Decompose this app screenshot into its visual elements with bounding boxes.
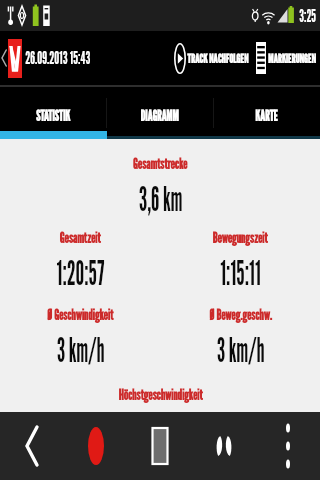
button[interactable]: KARTE	[213, 87, 320, 139]
staticText: 3:25	[299, 6, 316, 26]
staticText: MARKIERUNGEN	[268, 51, 316, 65]
button[interactable]: Stop	[128, 412, 192, 480]
staticText: TRACK NACHFOLGEN	[187, 51, 249, 65]
button[interactable]: Back	[0, 412, 64, 480]
staticText: STATISTIK	[36, 107, 70, 124]
staticText: DIAGRAMM	[140, 107, 179, 124]
button[interactable]: DIAGRAMM	[106, 87, 213, 139]
staticText: Bewegungszeit	[212, 229, 267, 246]
staticText: 1:20:57	[56, 252, 105, 293]
staticText: 3,6 km	[138, 178, 182, 219]
button[interactable]: Record	[64, 412, 128, 480]
staticText: Gesamtzeit	[59, 229, 101, 246]
staticText: Höchstgeschwindigkeit	[118, 386, 203, 403]
staticText: KARTE	[255, 107, 278, 124]
button[interactable]: STATISTIK	[0, 87, 106, 139]
staticText: 1:15:11	[220, 252, 261, 293]
button[interactable]: More options	[256, 412, 320, 480]
button[interactable]: MARKIERUNGEN	[256, 31, 320, 85]
staticText: Ø Beweg.geschw.	[209, 306, 272, 323]
staticText: 3 km/h	[216, 329, 265, 370]
staticText: Ø Geschwindigkeit	[47, 306, 113, 323]
staticText: Gesamtstrecke	[132, 155, 187, 172]
button[interactable]: Activity	[192, 412, 256, 480]
button[interactable]: 26.09.2013 15:43	[0, 31, 109, 85]
staticText: 3 km/h	[56, 329, 105, 370]
button[interactable]: TRACK NACHFOLGEN	[174, 31, 254, 85]
staticText: 26.09.2013 15:43	[25, 47, 90, 69]
